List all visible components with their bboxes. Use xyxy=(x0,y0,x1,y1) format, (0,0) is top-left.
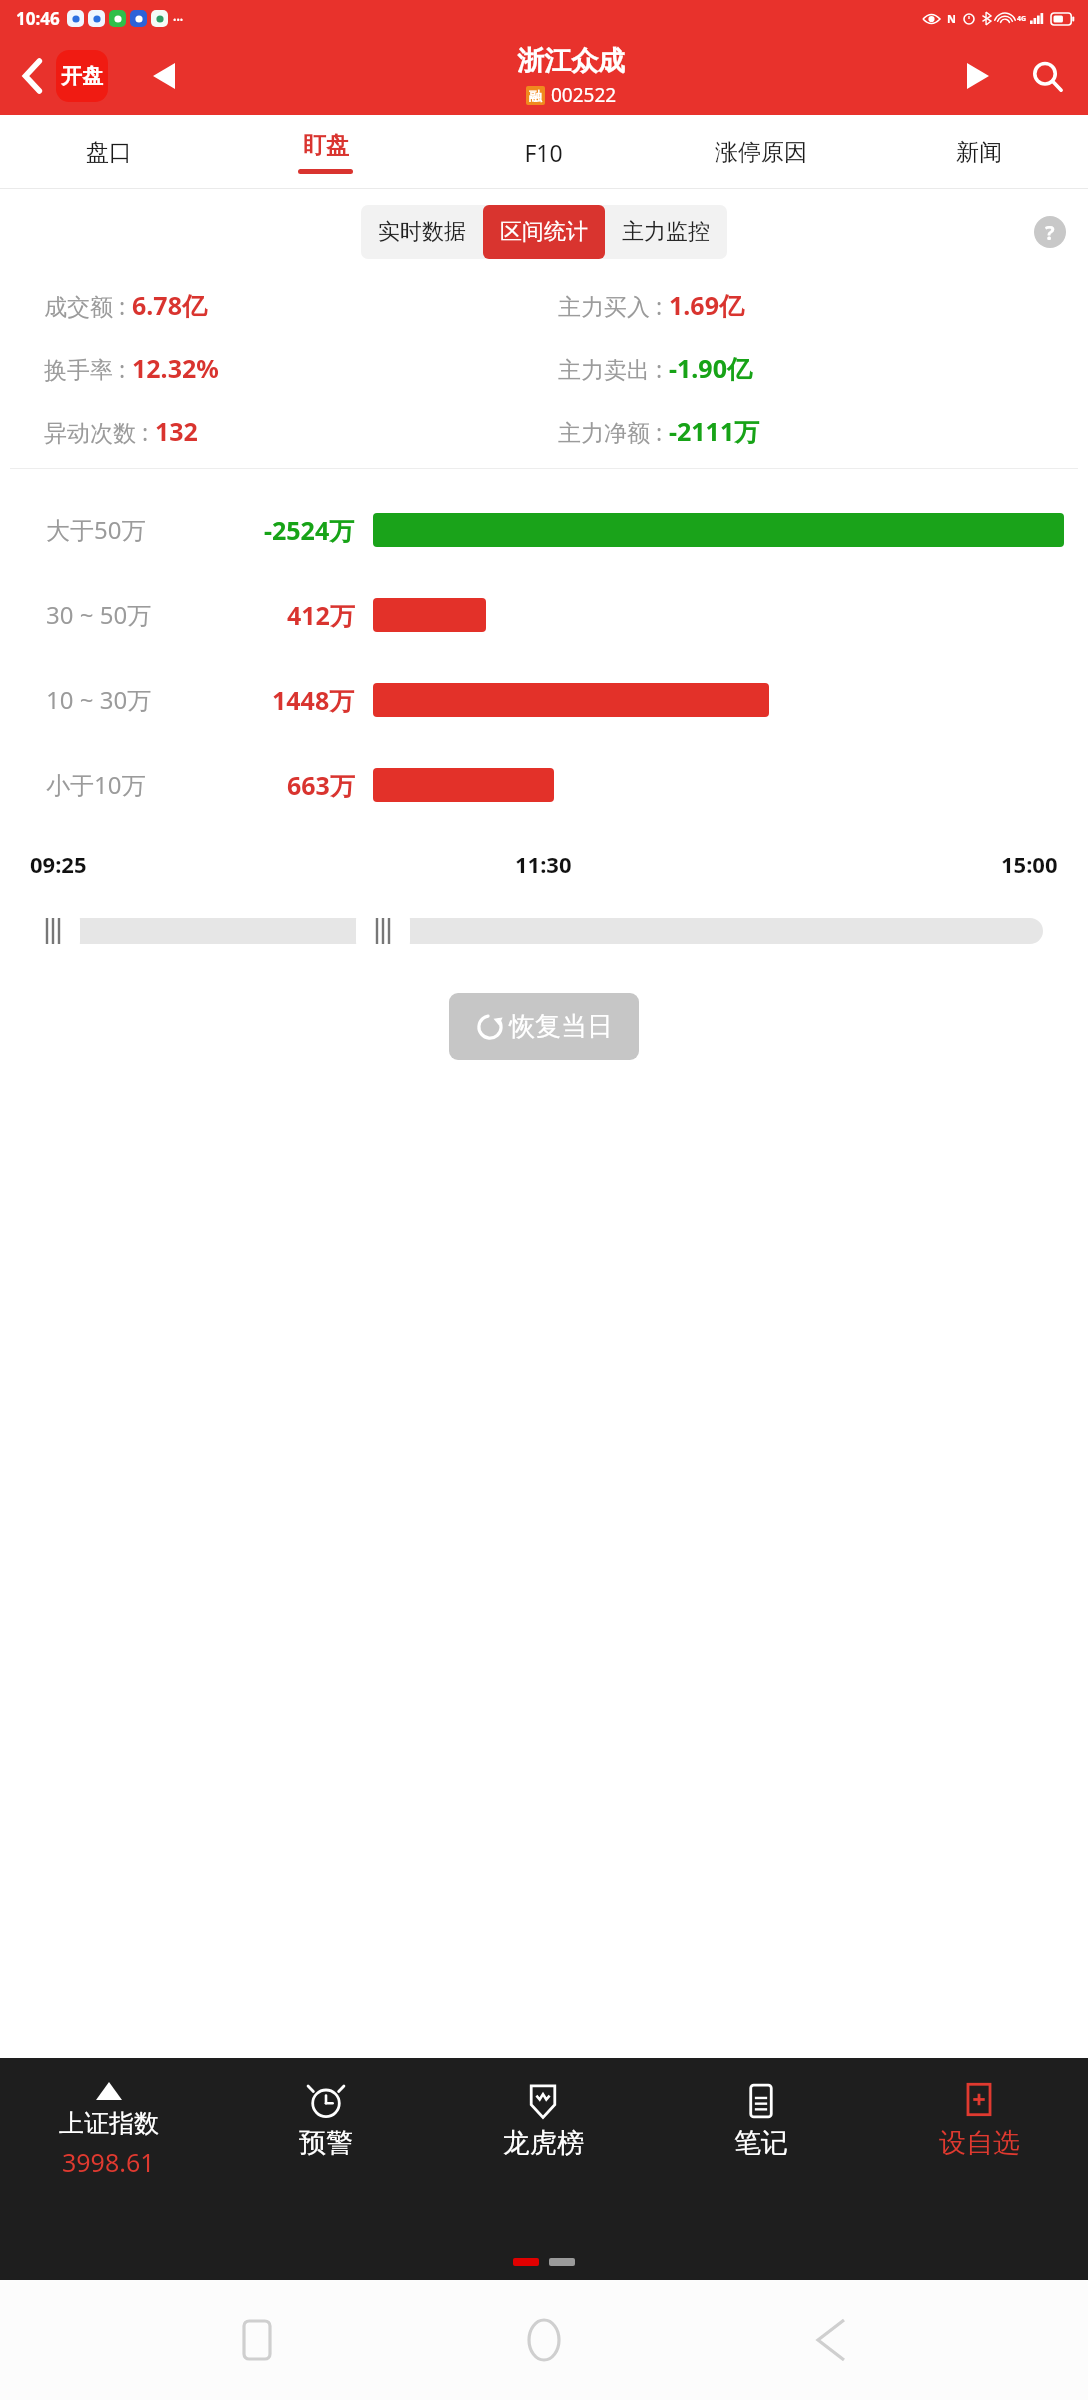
staticText: 大于50万 xyxy=(46,513,146,546)
button[interactable]: Recents xyxy=(227,2310,287,2370)
button[interactable]: Help xyxy=(1034,216,1066,248)
staticText: 10:46 xyxy=(16,7,60,30)
staticText: 盘口 xyxy=(86,138,132,167)
staticText: 融 xyxy=(529,88,542,104)
button[interactable]: 笔记 xyxy=(652,2082,870,2160)
staticText: 涨停原因 xyxy=(715,138,807,167)
button[interactable]: 龙虎榜 xyxy=(434,2082,652,2160)
button[interactable]: 区间统计 xyxy=(483,205,605,259)
staticText: 10 ~ 30万 xyxy=(46,683,152,716)
button[interactable]: 上证指数 xyxy=(0,2082,217,2179)
button[interactable]: Home xyxy=(514,2310,574,2370)
staticText: 浙江众成 xyxy=(517,44,625,78)
button[interactable]: 恢复当日 xyxy=(449,993,639,1060)
staticText: -2111万 xyxy=(669,414,760,448)
button[interactable]: Slider handle xyxy=(26,893,80,969)
staticText: 09:25 xyxy=(30,849,87,879)
staticText: 异动次数 : xyxy=(44,416,155,447)
staticText: 盯盘 xyxy=(303,131,349,160)
staticText: 002522 xyxy=(551,82,617,108)
staticText: 30 ~ 50万 xyxy=(46,598,152,631)
staticText: 换手率 : xyxy=(44,353,132,384)
staticText: -1.90亿 xyxy=(669,351,752,385)
staticText: -2524万 xyxy=(264,513,355,547)
staticText: 笔记 xyxy=(734,2126,788,2160)
staticText: 恢复当日 xyxy=(509,1010,613,1043)
button[interactable]: Slider handle xyxy=(356,893,410,969)
staticText: 区间统计 xyxy=(500,218,588,246)
staticText: 6.78亿 xyxy=(132,288,207,322)
staticText: F10 xyxy=(524,137,563,168)
staticText: 龙虎榜 xyxy=(503,2126,584,2160)
button[interactable]: 涨停原因 xyxy=(652,115,870,189)
staticText: 小于10万 xyxy=(46,768,146,801)
button[interactable]: Back xyxy=(801,2310,861,2370)
button[interactable]: 设自选 xyxy=(870,2082,1088,2160)
staticText: 663万 xyxy=(287,768,355,802)
button[interactable]: 主力监控 xyxy=(605,205,727,259)
staticText: 412万 xyxy=(287,598,355,632)
staticText: 12.32% xyxy=(132,351,219,385)
button[interactable]: Back xyxy=(10,53,56,99)
staticText: 3998.61 xyxy=(62,2145,155,2179)
staticText: 4G xyxy=(1017,14,1027,24)
staticText: 1448万 xyxy=(272,683,355,717)
button[interactable]: 盘口 xyxy=(0,115,217,189)
staticText: 主力卖出 : xyxy=(558,353,669,384)
staticText: 132 xyxy=(155,414,198,448)
button[interactable]: Search xyxy=(1024,53,1070,99)
staticText: ••• xyxy=(173,13,184,25)
staticText: 实时数据 xyxy=(378,218,466,246)
button[interactable]: 盯盘 xyxy=(217,115,434,189)
staticText: 成交额 : xyxy=(44,290,132,321)
button[interactable]: 实时数据 xyxy=(361,205,483,259)
staticText: 15:00 xyxy=(1001,849,1058,879)
staticText: 开盘 xyxy=(61,63,103,89)
button[interactable]: 开盘 xyxy=(56,50,108,102)
staticText: 主力监控 xyxy=(622,218,710,246)
button[interactable]: 预警 xyxy=(217,2082,434,2160)
staticText: 主力净额 : xyxy=(558,416,669,447)
button[interactable]: 新闻 xyxy=(870,115,1088,189)
staticText: 新闻 xyxy=(956,138,1002,167)
button[interactable]: Next stock xyxy=(956,54,1000,98)
staticText: 预警 xyxy=(299,2126,353,2160)
staticText: N xyxy=(947,11,956,26)
staticText: 主力买入 : xyxy=(558,290,669,321)
staticText: 上证指数 xyxy=(59,2108,159,2139)
staticText: 设自选 xyxy=(939,2126,1020,2160)
staticText: 11:30 xyxy=(515,849,572,879)
staticText: ? xyxy=(1045,219,1055,246)
button[interactable]: Previous stock xyxy=(142,54,186,98)
staticText: 1.69亿 xyxy=(669,288,744,322)
button[interactable]: F10 xyxy=(434,115,652,189)
